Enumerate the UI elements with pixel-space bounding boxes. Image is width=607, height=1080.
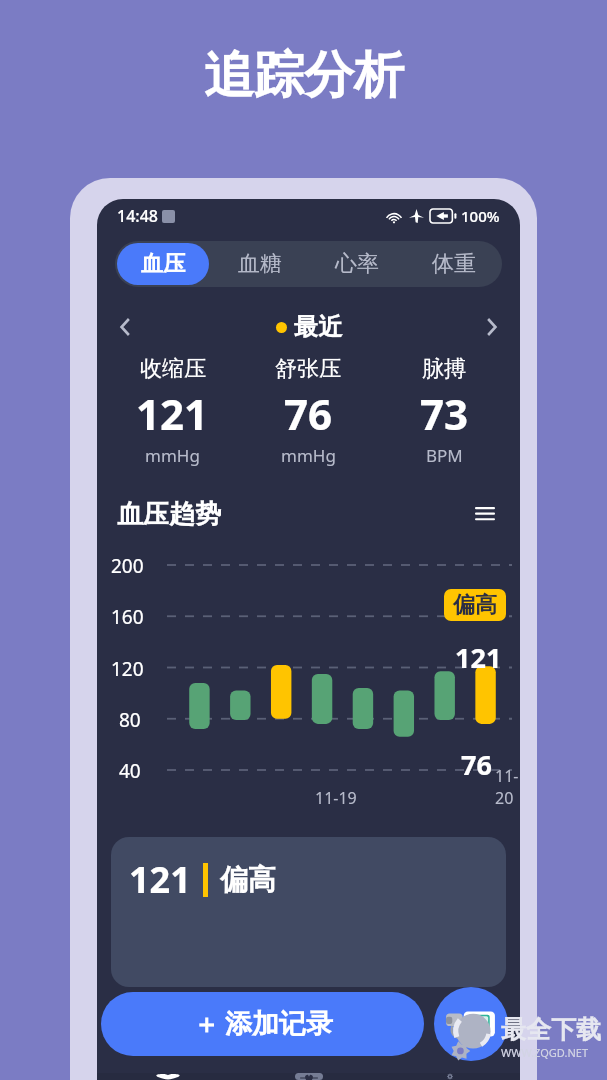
staticText: 体重 xyxy=(432,250,476,278)
staticText: 121 xyxy=(129,855,191,904)
button[interactable]: Settings xyxy=(379,1073,520,1080)
staticText: 76 xyxy=(461,746,492,783)
staticText: 14:48 xyxy=(117,205,158,227)
button[interactable]: 收缩压 xyxy=(105,355,240,467)
staticText: 心率 xyxy=(335,250,379,278)
staticText: 80 xyxy=(119,707,141,733)
staticText: 血糖 xyxy=(238,250,282,278)
staticText: mmHg xyxy=(281,444,336,467)
staticText: WWW.ZQGD.NET xyxy=(501,1045,588,1060)
staticText: 76 xyxy=(284,385,333,442)
staticText: 舒张压 xyxy=(275,355,341,383)
staticText: 11-19 xyxy=(315,787,357,809)
button[interactable]: Records xyxy=(238,1073,379,1080)
button[interactable]: Favorites xyxy=(97,1073,238,1080)
staticText: BPM xyxy=(426,444,463,467)
button[interactable]: 血压 xyxy=(117,243,209,285)
button[interactable]: 血糖 xyxy=(213,243,306,285)
staticText: 100% xyxy=(461,206,500,226)
staticText: 血压 xyxy=(141,250,185,278)
staticText: mmHg xyxy=(145,444,200,467)
button[interactable]: Previous xyxy=(111,312,141,342)
button[interactable]: 心率 xyxy=(310,243,403,285)
staticText: 偏高 xyxy=(220,862,276,897)
button[interactable]: List view xyxy=(470,499,500,529)
staticText: 40 xyxy=(119,758,141,784)
staticText: 收缩压 xyxy=(140,355,206,383)
staticText: 200 xyxy=(111,553,144,579)
button[interactable]: 舒张压 xyxy=(240,355,376,467)
staticText: 120 xyxy=(111,656,144,682)
staticText: 最全下载 xyxy=(501,1014,601,1045)
staticText: 血压趋势 xyxy=(117,498,221,531)
staticText: 脉搏 xyxy=(422,355,466,383)
staticText: 160 xyxy=(111,604,144,630)
staticText: 11-20 xyxy=(495,765,520,809)
button[interactable]: Blood pressure monitor xyxy=(434,987,508,1061)
staticText: ＋ xyxy=(193,1008,219,1041)
staticText: 121 xyxy=(136,385,209,442)
staticText: 添加记录 xyxy=(225,1007,333,1041)
button[interactable]: 脉搏 xyxy=(376,355,512,467)
staticText: 121 xyxy=(455,639,502,676)
button[interactable]: ＋ xyxy=(101,992,424,1056)
staticText: 最近 xyxy=(294,312,342,342)
button[interactable]: 体重 xyxy=(407,243,500,285)
staticText: 偏高 xyxy=(453,591,497,619)
button[interactable]: Next xyxy=(476,312,506,342)
button[interactable]: 121 xyxy=(111,837,506,987)
staticText: 追踪分析 xyxy=(204,44,404,107)
staticText: 73 xyxy=(420,385,469,442)
